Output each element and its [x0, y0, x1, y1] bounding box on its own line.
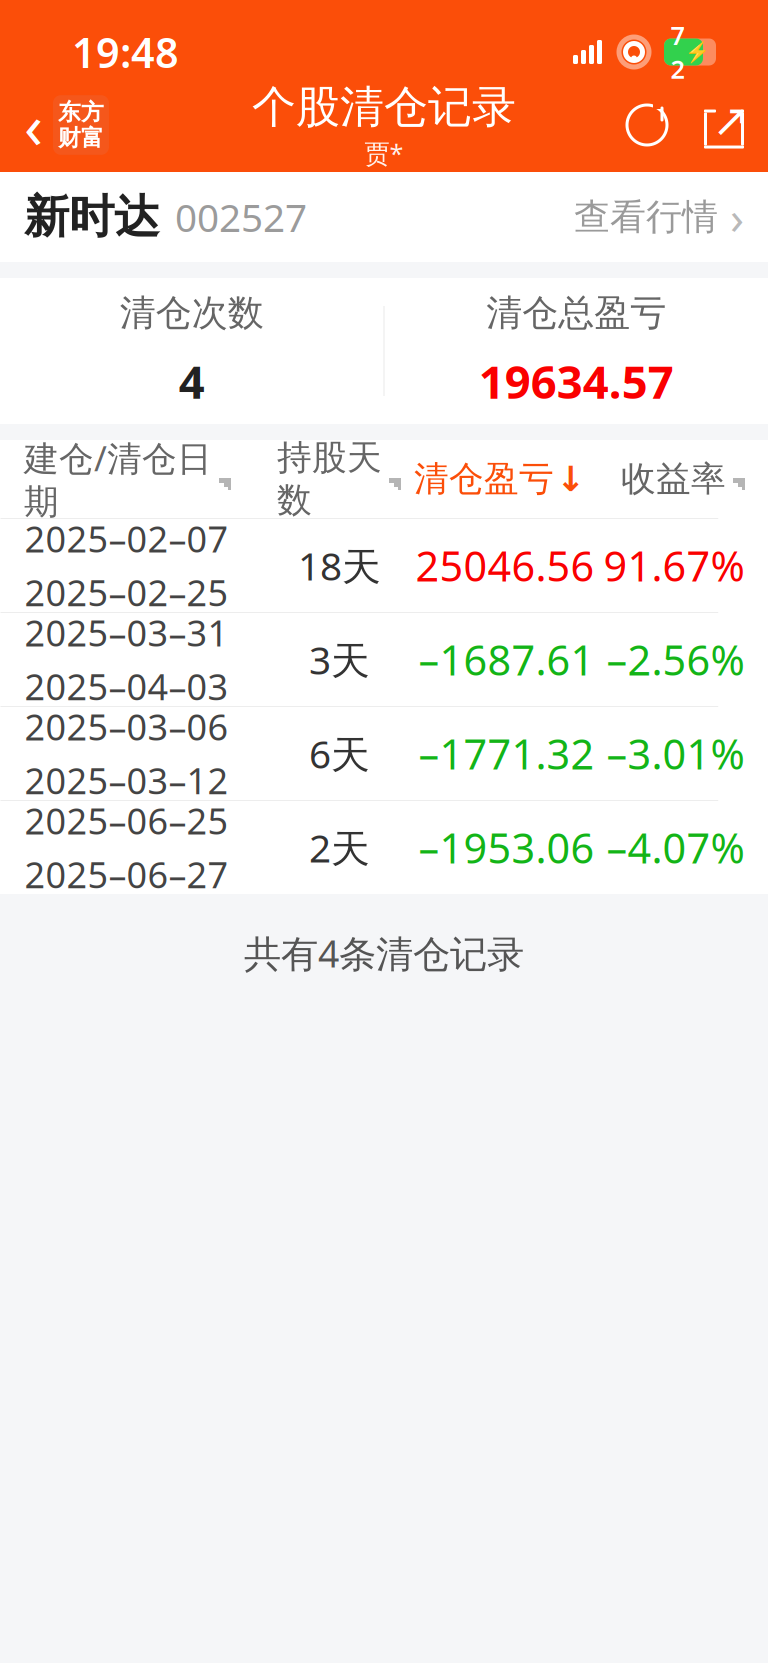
staticText: 财富 — [58, 124, 104, 152]
staticText: 72 — [670, 18, 684, 86]
button[interactable]: 2025–02–07 — [0, 519, 768, 612]
staticText: –3.01% — [606, 726, 744, 781]
staticText: 4 — [179, 351, 205, 411]
staticText: 6天 — [309, 728, 370, 779]
staticText: 东方 — [58, 98, 104, 126]
staticText: 个股清仓记录 — [252, 80, 516, 134]
staticText: 共有4条清仓记录 — [244, 928, 524, 978]
staticText: ⚡ — [684, 41, 709, 63]
button[interactable]: 分享 — [684, 88, 768, 162]
staticText: 91.67% — [603, 538, 744, 593]
staticText: 2025–06–25 — [24, 797, 228, 844]
button[interactable]: 返回 东方财富 — [0, 78, 123, 172]
staticText: 2025–04–03 — [24, 662, 228, 710]
staticText: 2025–02–07 — [24, 515, 228, 562]
button[interactable]: 清仓盈亏 — [414, 458, 585, 500]
staticText: 2025–06–27 — [24, 850, 228, 898]
staticText: 002527 — [175, 191, 307, 243]
staticText: 清仓次数 — [120, 291, 264, 335]
staticText: 2025–02–25 — [24, 568, 228, 616]
button[interactable]: 2025–03–06 — [0, 707, 768, 800]
staticText: –1953.06 — [418, 820, 594, 875]
staticText: 贾* — [364, 136, 403, 170]
button[interactable]: 新时达 — [0, 172, 768, 262]
staticText: –4.07% — [606, 820, 744, 875]
button[interactable]: 刷新 — [610, 88, 684, 162]
staticText: 3天 — [309, 634, 370, 685]
button[interactable]: 2025–03–31 — [0, 613, 768, 706]
staticText: 清仓盈亏 — [414, 458, 554, 500]
staticText: 新时达 — [24, 189, 159, 245]
staticText: –1687.61 — [418, 632, 594, 687]
staticText: 25046.56 — [415, 538, 594, 593]
staticText: 2025–03–31 — [24, 609, 228, 656]
staticText: 2天 — [309, 822, 370, 873]
staticText: –2.56% — [606, 632, 744, 687]
staticText: 2025–03–12 — [24, 756, 228, 804]
staticText: 建仓/清仓日期 — [24, 435, 212, 523]
button[interactable]: 建仓/清仓日期 — [0, 435, 264, 523]
staticText: 收益率 — [621, 458, 726, 500]
staticText: 18天 — [298, 540, 381, 591]
staticText: ↓ — [556, 459, 585, 499]
staticText: 19634.57 — [479, 351, 674, 411]
staticText: –1771.32 — [418, 726, 594, 781]
button[interactable]: 收益率 — [585, 458, 768, 500]
button[interactable]: 2025–06–25 — [0, 801, 768, 894]
staticText: 清仓总盈亏 — [486, 291, 666, 335]
staticText: 19:48 — [72, 25, 179, 79]
staticText: ‹ — [24, 84, 43, 166]
staticText: 持股天数 — [277, 436, 382, 522]
button[interactable]: 持股天数 — [264, 436, 414, 522]
staticText: 2025–03–06 — [24, 703, 228, 750]
staticText: 查看行情 — [574, 195, 718, 239]
staticText: › — [730, 187, 744, 247]
staticText: ↗ — [712, 95, 750, 146]
